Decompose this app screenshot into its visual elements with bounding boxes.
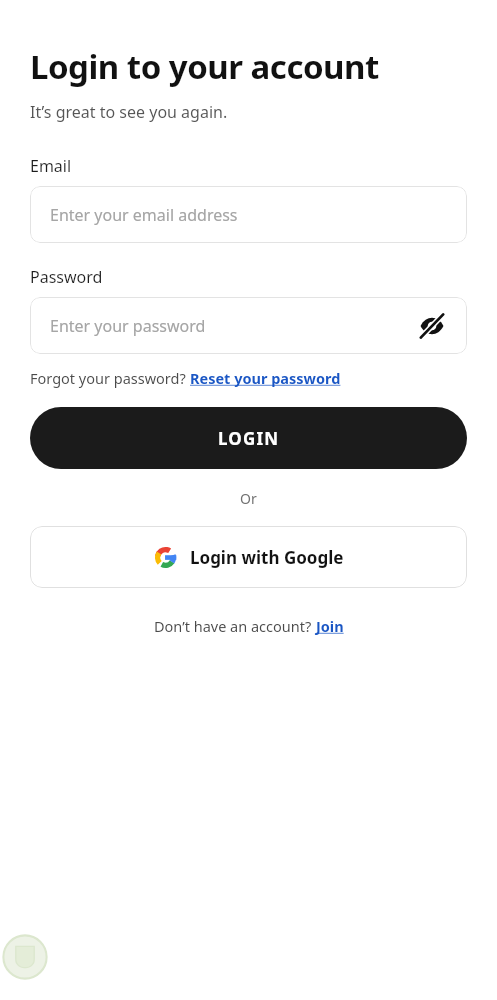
- staticText: Reset your password: [190, 368, 341, 388]
- staticText: LOGIN: [218, 427, 280, 450]
- staticText: Join: [316, 616, 344, 636]
- staticText: Or: [240, 489, 257, 508]
- staticText: It’s great to see you again.: [30, 101, 228, 123]
- button[interactable]: Enter your email address: [30, 186, 467, 243]
- staticText: Don’t have an account?: [154, 616, 316, 636]
- staticText: Forgot your password?: [30, 368, 190, 388]
- button[interactable]: Reset your password: [190, 368, 341, 388]
- staticText: Login with Google: [190, 546, 344, 569]
- button[interactable]: Login with Google: [30, 526, 467, 588]
- staticText: Login to your account: [30, 44, 379, 89]
- staticText: Enter your password: [50, 315, 206, 337]
- button[interactable]: Join: [316, 616, 344, 636]
- staticText: Email: [30, 155, 72, 177]
- button[interactable]: Enter your password: [30, 297, 467, 354]
- staticText: Enter your email address: [50, 204, 238, 226]
- staticText: Password: [30, 266, 103, 288]
- button[interactable]: LOGIN: [30, 407, 467, 469]
- button[interactable]: Show password: [415, 309, 449, 343]
